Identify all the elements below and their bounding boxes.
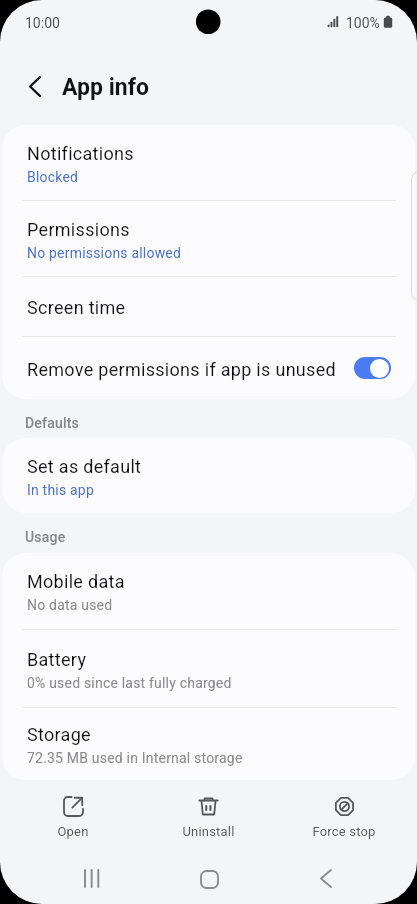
button[interactable]: Back (305, 857, 347, 899)
button[interactable]: Battery (2, 630, 415, 707)
button[interactable]: Remove permissions if app is unused (354, 357, 391, 379)
staticText: Blocked (27, 169, 79, 185)
staticText: 72.35 MB used in Internal storage (27, 750, 243, 766)
button[interactable]: Recent apps (70, 857, 112, 899)
staticText: Set as default (27, 456, 142, 477)
staticText: No permissions allowed (27, 245, 182, 261)
staticText: Force stop (312, 824, 376, 839)
staticText: No data used (27, 597, 113, 613)
staticText: Permissions (27, 219, 130, 240)
button[interactable]: Screen time (2, 277, 415, 336)
button[interactable]: Home (188, 858, 230, 900)
button[interactable]: Permissions (2, 201, 415, 276)
staticText: Usage (25, 529, 66, 545)
button[interactable]: Notifications (2, 125, 415, 200)
staticText: Defaults (25, 415, 79, 431)
button[interactable]: Uninstall (148, 780, 268, 858)
staticText: 100% (346, 15, 380, 31)
staticText: 0% used since last fully charged (27, 675, 232, 691)
staticText: Battery (27, 649, 87, 670)
button[interactable]: Remove permissions if app is unused (2, 337, 415, 399)
staticText: Mobile data (27, 571, 125, 592)
staticText: Remove permissions if app is unused (27, 359, 336, 380)
button[interactable]: Mobile data (2, 553, 415, 629)
button[interactable]: Set as default (2, 438, 415, 513)
button[interactable]: Back (13, 64, 57, 108)
staticText: Uninstall (182, 824, 235, 839)
staticText: 10:00 (25, 15, 60, 31)
staticText: In this app (27, 482, 94, 498)
button[interactable]: Open (13, 780, 133, 858)
button[interactable]: Storage (2, 708, 415, 780)
staticText: App info (62, 74, 149, 101)
staticText: Screen time (27, 297, 126, 318)
staticText: Notifications (27, 143, 134, 164)
button[interactable]: Force stop (284, 780, 404, 858)
staticText: Storage (27, 724, 91, 745)
staticText: Open (57, 824, 89, 839)
